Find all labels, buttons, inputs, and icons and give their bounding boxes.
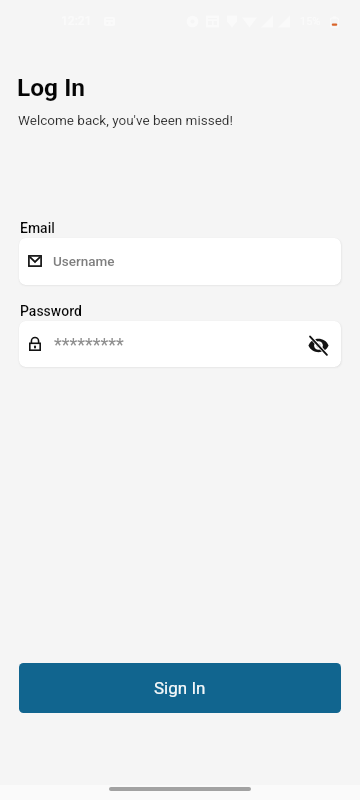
button[interactable]: Username xyxy=(19,238,341,285)
staticText: Password xyxy=(20,303,82,319)
staticText: ********* xyxy=(54,334,124,355)
staticText: Username xyxy=(53,253,115,269)
button[interactable]: ********* xyxy=(19,321,341,367)
button[interactable]: Sign In xyxy=(19,663,341,713)
staticText: Log In xyxy=(17,73,86,102)
staticText: Welcome back, you've been missed! xyxy=(18,112,233,128)
staticText: Email xyxy=(20,220,55,236)
button[interactable]: Show password xyxy=(303,330,333,360)
staticText: Sign In xyxy=(154,678,206,698)
